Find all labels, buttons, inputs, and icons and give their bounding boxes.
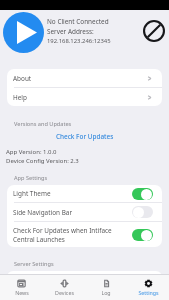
- staticText: Server Settings: [14, 260, 54, 268]
- button[interactable]: Light Theme: [7, 185, 162, 202]
- staticText: Check For Updates: [56, 132, 114, 141]
- staticText: Settings: [138, 289, 159, 296]
- staticText: Server Address:: [47, 27, 94, 36]
- staticText: Help: [13, 93, 27, 102]
- button[interactable]: Side Navigation Bar: [7, 203, 162, 221]
- staticText: 192.168.123.246:12345: [47, 37, 111, 45]
- button[interactable]: Settings: [127, 275, 169, 300]
- staticText: Log: [101, 289, 111, 296]
- staticText: App Settings: [14, 174, 48, 182]
- staticText: Light Theme: [13, 189, 132, 198]
- staticText: Device Config Version: 2.3: [6, 157, 79, 165]
- staticText: App Version: 1.0.0: [6, 148, 57, 156]
- staticText: News: [15, 289, 29, 296]
- button[interactable]: Help: [7, 88, 162, 106]
- button[interactable]: Stop Server: [141, 18, 167, 44]
- button[interactable]: Check For Updates when Intiface Central …: [7, 222, 162, 247]
- button[interactable]: Check For Updates: [0, 130, 169, 142]
- button[interactable]: Log: [85, 275, 127, 300]
- button[interactable]: About: [7, 69, 162, 87]
- button[interactable]: Devices: [43, 275, 85, 300]
- button[interactable]: News: [0, 275, 43, 300]
- staticText: No Client Connected: [47, 17, 109, 26]
- staticText: Versions and Updates: [14, 120, 72, 128]
- staticText: About: [13, 74, 32, 83]
- staticText: Check For Updates when Intiface Central …: [13, 226, 132, 244]
- button[interactable]: Start Server: [3, 12, 44, 53]
- staticText: Devices: [55, 289, 74, 296]
- staticText: Side Navigation Bar: [13, 208, 132, 217]
